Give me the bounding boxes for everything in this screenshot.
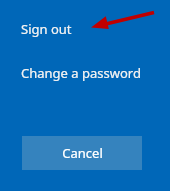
button[interactable]: Sign out — [21, 19, 81, 39]
other: Annotation arrow pointing at Sign out — [86, 6, 160, 36]
button[interactable]: Change a password — [21, 62, 157, 83]
staticText: Cancel — [62, 144, 103, 162]
staticText: Change a password — [21, 64, 141, 82]
button[interactable]: Cancel — [22, 136, 142, 170]
staticText: Sign out — [21, 20, 72, 38]
